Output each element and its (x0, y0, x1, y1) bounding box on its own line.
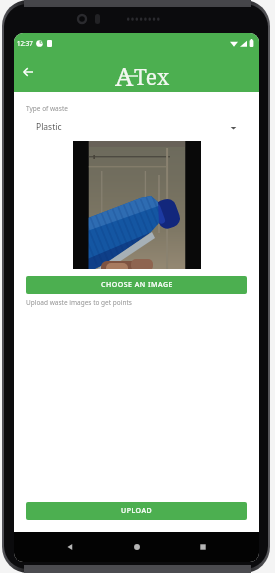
button[interactable]: Plastic (14, 121, 259, 133)
button[interactable]: Home (126, 536, 148, 558)
staticText: Plastic (36, 121, 62, 133)
staticText: Upload waste images to get points (26, 298, 132, 307)
staticText: 12:37 (17, 39, 33, 47)
staticText: Type of waste (26, 104, 68, 113)
button[interactable]: UPLOAD (26, 502, 247, 520)
button[interactable]: CHOOSE AN IMAGE (26, 276, 247, 294)
staticText: UPLOAD (121, 506, 153, 516)
button[interactable]: Back (16, 60, 40, 84)
staticText: CHOOSE AN IMAGE (101, 280, 173, 290)
staticText: A (115, 58, 134, 93)
button[interactable]: Recent apps (192, 536, 214, 558)
staticText: Tex (134, 63, 170, 92)
button[interactable]: Back (59, 536, 81, 558)
